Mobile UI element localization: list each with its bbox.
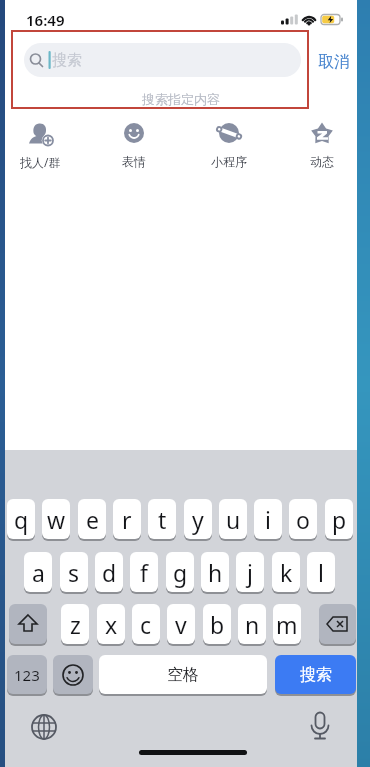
button[interactable]: k	[272, 552, 300, 592]
staticText: r	[122, 504, 132, 535]
button[interactable]	[53, 655, 93, 694]
staticText: 123	[14, 665, 40, 685]
staticText: g	[173, 557, 188, 588]
staticText: m	[276, 609, 298, 640]
button[interactable]: n	[238, 604, 266, 644]
button[interactable]: 123	[7, 655, 47, 694]
button[interactable]	[308, 711, 332, 741]
button[interactable]: h	[201, 552, 229, 592]
button[interactable]: r	[113, 499, 141, 539]
button[interactable]: 空格	[99, 655, 267, 694]
staticText: z	[70, 609, 81, 640]
button[interactable]: v	[167, 604, 195, 644]
staticText: 小程序	[211, 154, 247, 169]
staticText: k	[280, 557, 293, 588]
button[interactable]: 动态	[299, 118, 345, 169]
button[interactable]: y	[184, 499, 212, 539]
staticText: c	[140, 609, 152, 640]
button[interactable]: 表情	[111, 118, 157, 169]
staticText: 搜索指定内容	[142, 91, 220, 107]
button[interactable]: u	[219, 499, 247, 539]
button[interactable]	[9, 604, 47, 644]
button[interactable]: j	[236, 552, 264, 592]
staticText: n	[245, 609, 260, 640]
staticText: 空格	[167, 665, 199, 685]
staticText: h	[208, 557, 223, 588]
button[interactable]: d	[95, 552, 123, 592]
staticText: a	[32, 557, 45, 588]
staticText: 取消	[318, 52, 350, 72]
button[interactable]: t	[148, 499, 176, 539]
button[interactable]: 找人/群	[17, 118, 63, 170]
staticText: e	[86, 504, 99, 535]
staticText: w	[47, 504, 66, 535]
staticText: x	[105, 609, 118, 640]
staticText: b	[210, 609, 225, 640]
staticText: d	[102, 557, 117, 588]
staticText: o	[296, 504, 310, 535]
button[interactable]: q	[7, 499, 35, 539]
staticText: q	[14, 504, 29, 535]
staticText: s	[68, 557, 80, 588]
staticText: 16:49	[26, 10, 65, 30]
button[interactable]: l	[307, 552, 335, 592]
button[interactable]: e	[78, 499, 106, 539]
button[interactable]: s	[60, 552, 88, 592]
button[interactable]: 搜索	[24, 43, 301, 77]
button[interactable]: b	[203, 604, 231, 644]
button[interactable]: m	[273, 604, 301, 644]
staticText: j	[247, 557, 253, 588]
button[interactable]	[30, 713, 58, 741]
staticText: y	[192, 504, 204, 535]
button[interactable]: o	[289, 499, 317, 539]
button[interactable]: i	[254, 499, 282, 539]
button[interactable]: p	[325, 499, 353, 539]
staticText: t	[158, 504, 167, 535]
button[interactable]: c	[132, 604, 160, 644]
staticText: 表情	[122, 154, 146, 169]
staticText: i	[265, 504, 271, 535]
staticText: l	[318, 557, 324, 588]
staticText: 搜索	[300, 665, 332, 685]
button[interactable]: 搜索	[275, 655, 356, 694]
staticText: p	[332, 504, 347, 535]
staticText: u	[226, 504, 241, 535]
button[interactable]: z	[61, 604, 89, 644]
staticText: v	[175, 609, 187, 640]
button[interactable]: a	[24, 552, 52, 592]
button[interactable]: g	[166, 552, 194, 592]
staticText: 动态	[310, 154, 334, 169]
staticText: 搜索	[52, 51, 82, 70]
button[interactable]: f	[130, 552, 158, 592]
button[interactable]	[319, 604, 356, 644]
button[interactable]: 取消	[313, 50, 355, 74]
staticText: 找人/群	[20, 154, 61, 170]
button[interactable]: x	[97, 604, 125, 644]
button[interactable]: 小程序	[203, 118, 255, 169]
button[interactable]: w	[42, 499, 70, 539]
staticText: f	[140, 557, 148, 588]
